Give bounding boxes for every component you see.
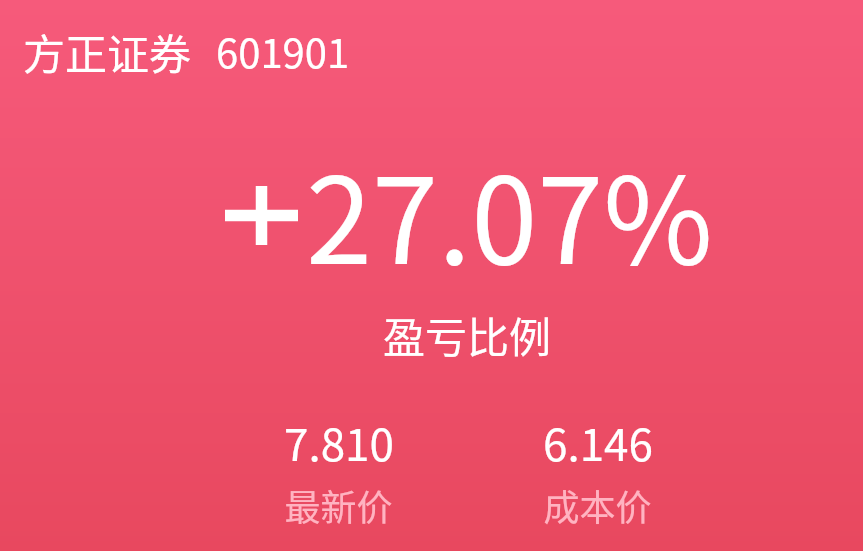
staticText: 成本价 [543,479,652,531]
button[interactable]: 方正证券 [23,14,362,88]
staticText: 7.810 [284,410,394,474]
staticText: 27.07% [306,126,713,298]
staticText: 方正证券 [23,21,192,82]
other: Gain, positive [225,186,308,246]
staticText: 601901 [216,22,350,80]
staticText: 6.146 [543,410,653,474]
button[interactable]: 7.810 [209,410,468,531]
button[interactable]: 6.146 [468,410,727,531]
staticText: 盈亏比例 [383,304,552,365]
staticText: 最新价 [284,479,393,531]
